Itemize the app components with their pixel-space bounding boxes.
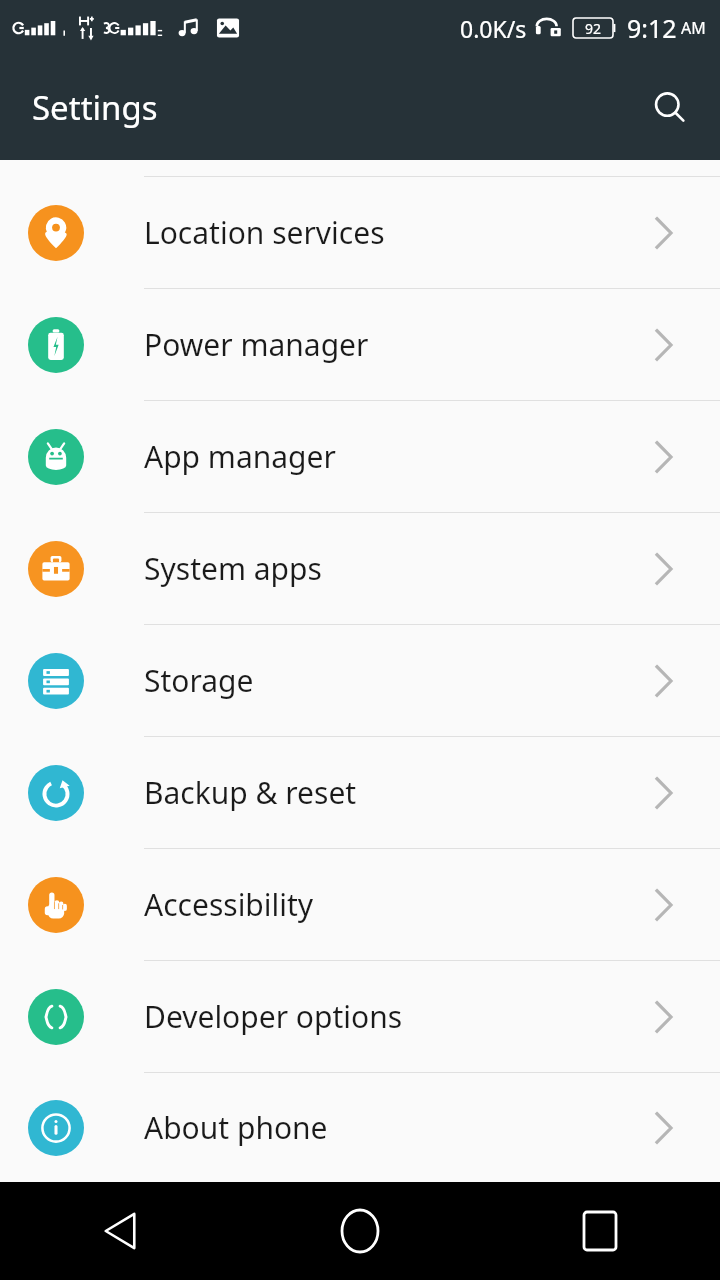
button[interactable]: Back — [0, 1182, 240, 1280]
button[interactable]: Location services — [0, 177, 720, 288]
staticText: Developer options — [144, 996, 403, 1037]
staticText: Backup & reset — [144, 772, 357, 813]
button[interactable]: Recent apps — [480, 1182, 720, 1280]
button[interactable]: App manager — [0, 401, 720, 512]
button[interactable]: Storage — [0, 625, 720, 736]
button[interactable]: Accessibility — [0, 849, 720, 960]
staticText: AM — [681, 17, 706, 39]
staticText: 9:12 — [627, 11, 677, 45]
staticText: Location services — [144, 212, 385, 253]
staticText: App manager — [144, 436, 336, 477]
staticText: Power manager — [144, 324, 369, 365]
button[interactable]: Developer options — [0, 961, 720, 1072]
staticText: System apps — [144, 548, 322, 589]
staticText: Accessibility — [144, 884, 314, 925]
staticText: Settings — [32, 85, 158, 130]
staticText: 0.0K/s — [460, 13, 527, 44]
button[interactable]: System apps — [0, 513, 720, 624]
button[interactable]: Power manager — [0, 289, 720, 400]
staticText: About phone — [144, 1107, 328, 1148]
button[interactable]: Home — [240, 1182, 480, 1280]
staticText: 92 — [585, 19, 602, 38]
button[interactable]: Backup & reset — [0, 737, 720, 848]
staticText: Storage — [144, 660, 254, 701]
button[interactable]: About phone — [0, 1073, 720, 1182]
button[interactable]: Search — [640, 78, 700, 138]
